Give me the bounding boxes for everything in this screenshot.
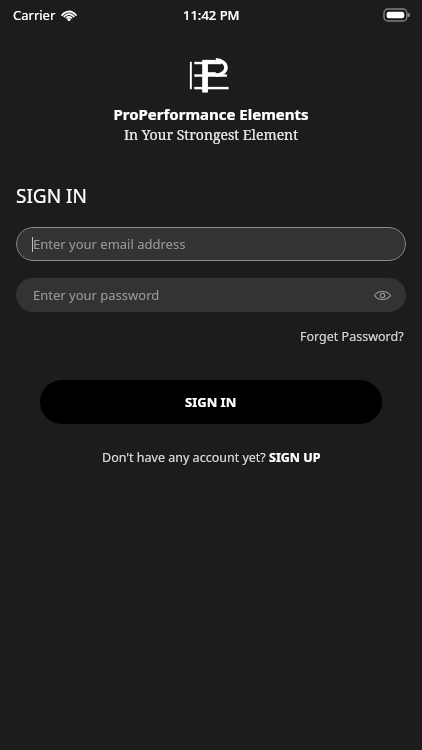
staticText: Don't have any account yet? SIGN UP (102, 449, 321, 466)
staticText: 11:42 PM (183, 6, 240, 24)
staticText: In Your Strongest Element (0, 125, 422, 144)
staticText: Enter your email address (33, 235, 186, 253)
staticText: Enter your password (33, 286, 372, 304)
button[interactable]: Show password (372, 285, 392, 305)
staticText: Carrier (13, 6, 56, 24)
button[interactable]: Enter your password (16, 278, 406, 312)
staticText: ProPerformance Elements (0, 104, 422, 124)
staticText: Forget Password? (300, 328, 404, 345)
staticText: SIGN IN (185, 393, 237, 411)
staticText: SIGN IN (16, 183, 87, 209)
button[interactable]: Don't have any account yet? SIGN UP (98, 446, 325, 469)
button[interactable]: SIGN IN (40, 380, 382, 424)
button[interactable]: Enter your email address (16, 227, 406, 261)
button[interactable]: Forget Password? (298, 325, 406, 348)
